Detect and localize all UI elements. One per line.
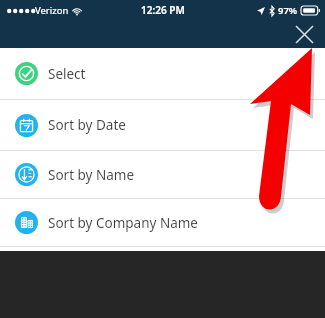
button[interactable]: Select (0, 48, 325, 99)
button[interactable]: Sort by Name (0, 151, 325, 198)
staticText: Verizon (35, 4, 69, 17)
staticText: 12:26 PM (141, 3, 185, 17)
staticText: 97% (278, 4, 298, 17)
button[interactable]: Sort by Date (0, 100, 325, 150)
button[interactable]: Close (291, 21, 317, 47)
button[interactable]: Sort by Company Name (0, 199, 325, 246)
staticText: Sort by Date (48, 116, 126, 134)
staticText: Sort by Company Name (48, 214, 198, 232)
staticText: Select (48, 65, 86, 83)
staticText: Sort by Name (48, 166, 135, 184)
